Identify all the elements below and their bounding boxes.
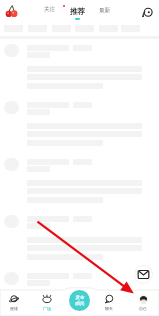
button[interactable]: Search [142,7,153,18]
button[interactable]: 关注 [44,6,56,15]
button[interactable]: 最新 [99,7,111,16]
staticText: 发布 瞬间 [75,295,85,306]
staticText: 推荐 [70,7,86,17]
button[interactable]: 星球 [7,294,21,316]
button[interactable]: 聊天 [102,294,116,316]
button[interactable]: Messages [134,265,153,284]
staticText: 最新 [99,7,111,14]
staticText: 广场 [43,306,51,311]
staticText: 关注 [44,6,56,13]
staticText: 自己 [139,306,147,311]
button[interactable]: 广场 [40,294,54,316]
staticText: 星球 [10,306,18,311]
button[interactable]: Profile [136,294,150,316]
button[interactable]: 发布 瞬间 [69,290,90,311]
staticText: 聊天 [105,306,113,311]
button[interactable]: 推荐 [70,7,86,20]
